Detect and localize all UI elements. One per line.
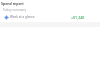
other: AI assist [4, 15, 9, 20]
staticText: Spend report [1, 1, 24, 6]
staticText: Today summary [3, 8, 27, 12]
button[interactable]: AI assist [0, 14, 100, 20]
staticText: Week at a glance [10, 15, 35, 19]
staticText: +$1,240 [71, 15, 85, 20]
